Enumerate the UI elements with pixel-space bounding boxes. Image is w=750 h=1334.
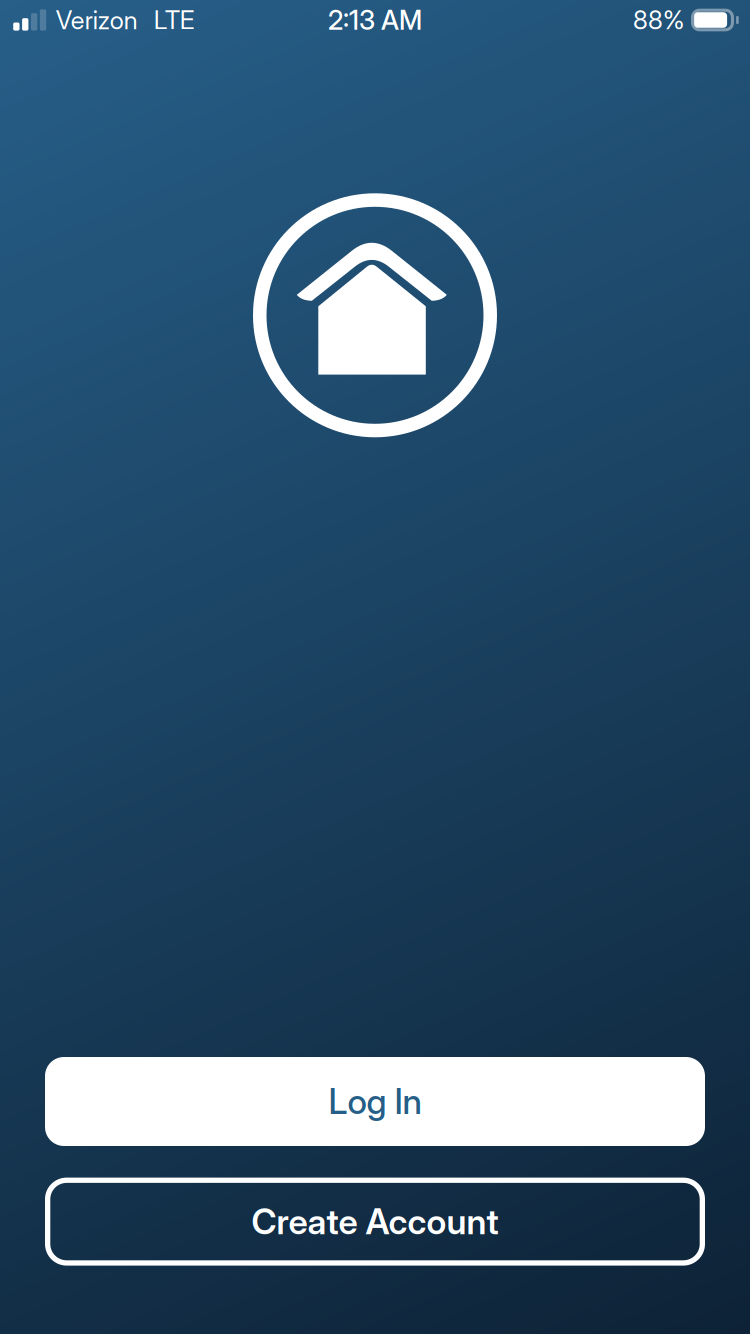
button[interactable]: Log In <box>45 1057 705 1146</box>
staticText: 88% <box>633 5 684 35</box>
staticText: Log In <box>328 1080 421 1122</box>
staticText: 2:13 AM <box>328 4 422 36</box>
staticText: Create Account <box>251 1201 498 1242</box>
button[interactable]: Create Account <box>45 1178 705 1266</box>
staticText: Verizon <box>56 5 138 35</box>
staticText: LTE <box>154 5 195 35</box>
